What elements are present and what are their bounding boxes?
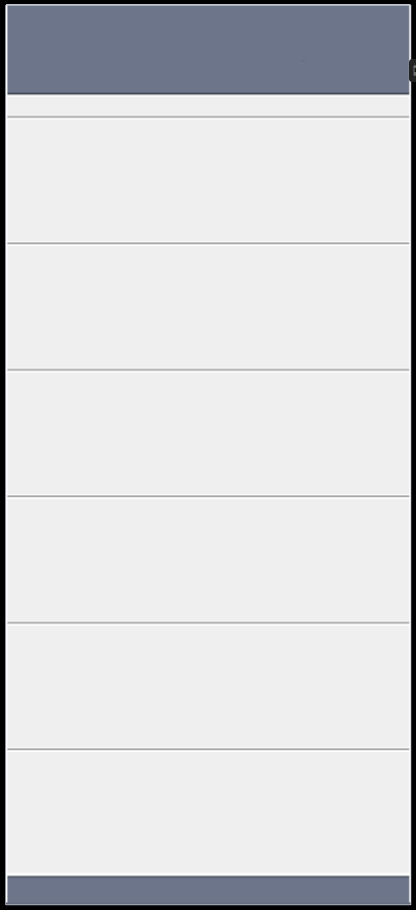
button[interactable]: Overflow menu	[409, 59, 416, 82]
button[interactable]: List item 1	[6, 94, 410, 117]
button[interactable]: Bottom bar	[6, 876, 410, 905]
button[interactable]: List item 6	[6, 624, 410, 749]
button[interactable]: List item 2	[6, 118, 410, 243]
button[interactable]: App bar	[6, 5, 410, 94]
button[interactable]: List item 7	[6, 750, 410, 876]
button[interactable]: List item 4	[6, 371, 410, 496]
